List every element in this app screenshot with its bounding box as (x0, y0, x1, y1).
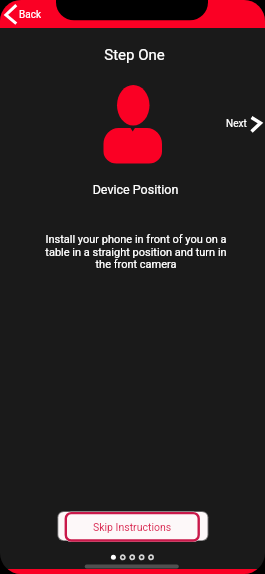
staticText: Next (226, 118, 247, 130)
button[interactable]: Back (2, 2, 48, 26)
button[interactable]: Next (222, 112, 265, 134)
staticText: Device Position (3, 182, 265, 197)
button[interactable]: Skip Instructions (64, 512, 200, 542)
staticText: Step One (2, 46, 265, 64)
staticText: Install your phone in front of you on a … (44, 233, 228, 270)
staticText: Back (19, 9, 41, 21)
staticText: Skip Instructions (93, 521, 172, 533)
